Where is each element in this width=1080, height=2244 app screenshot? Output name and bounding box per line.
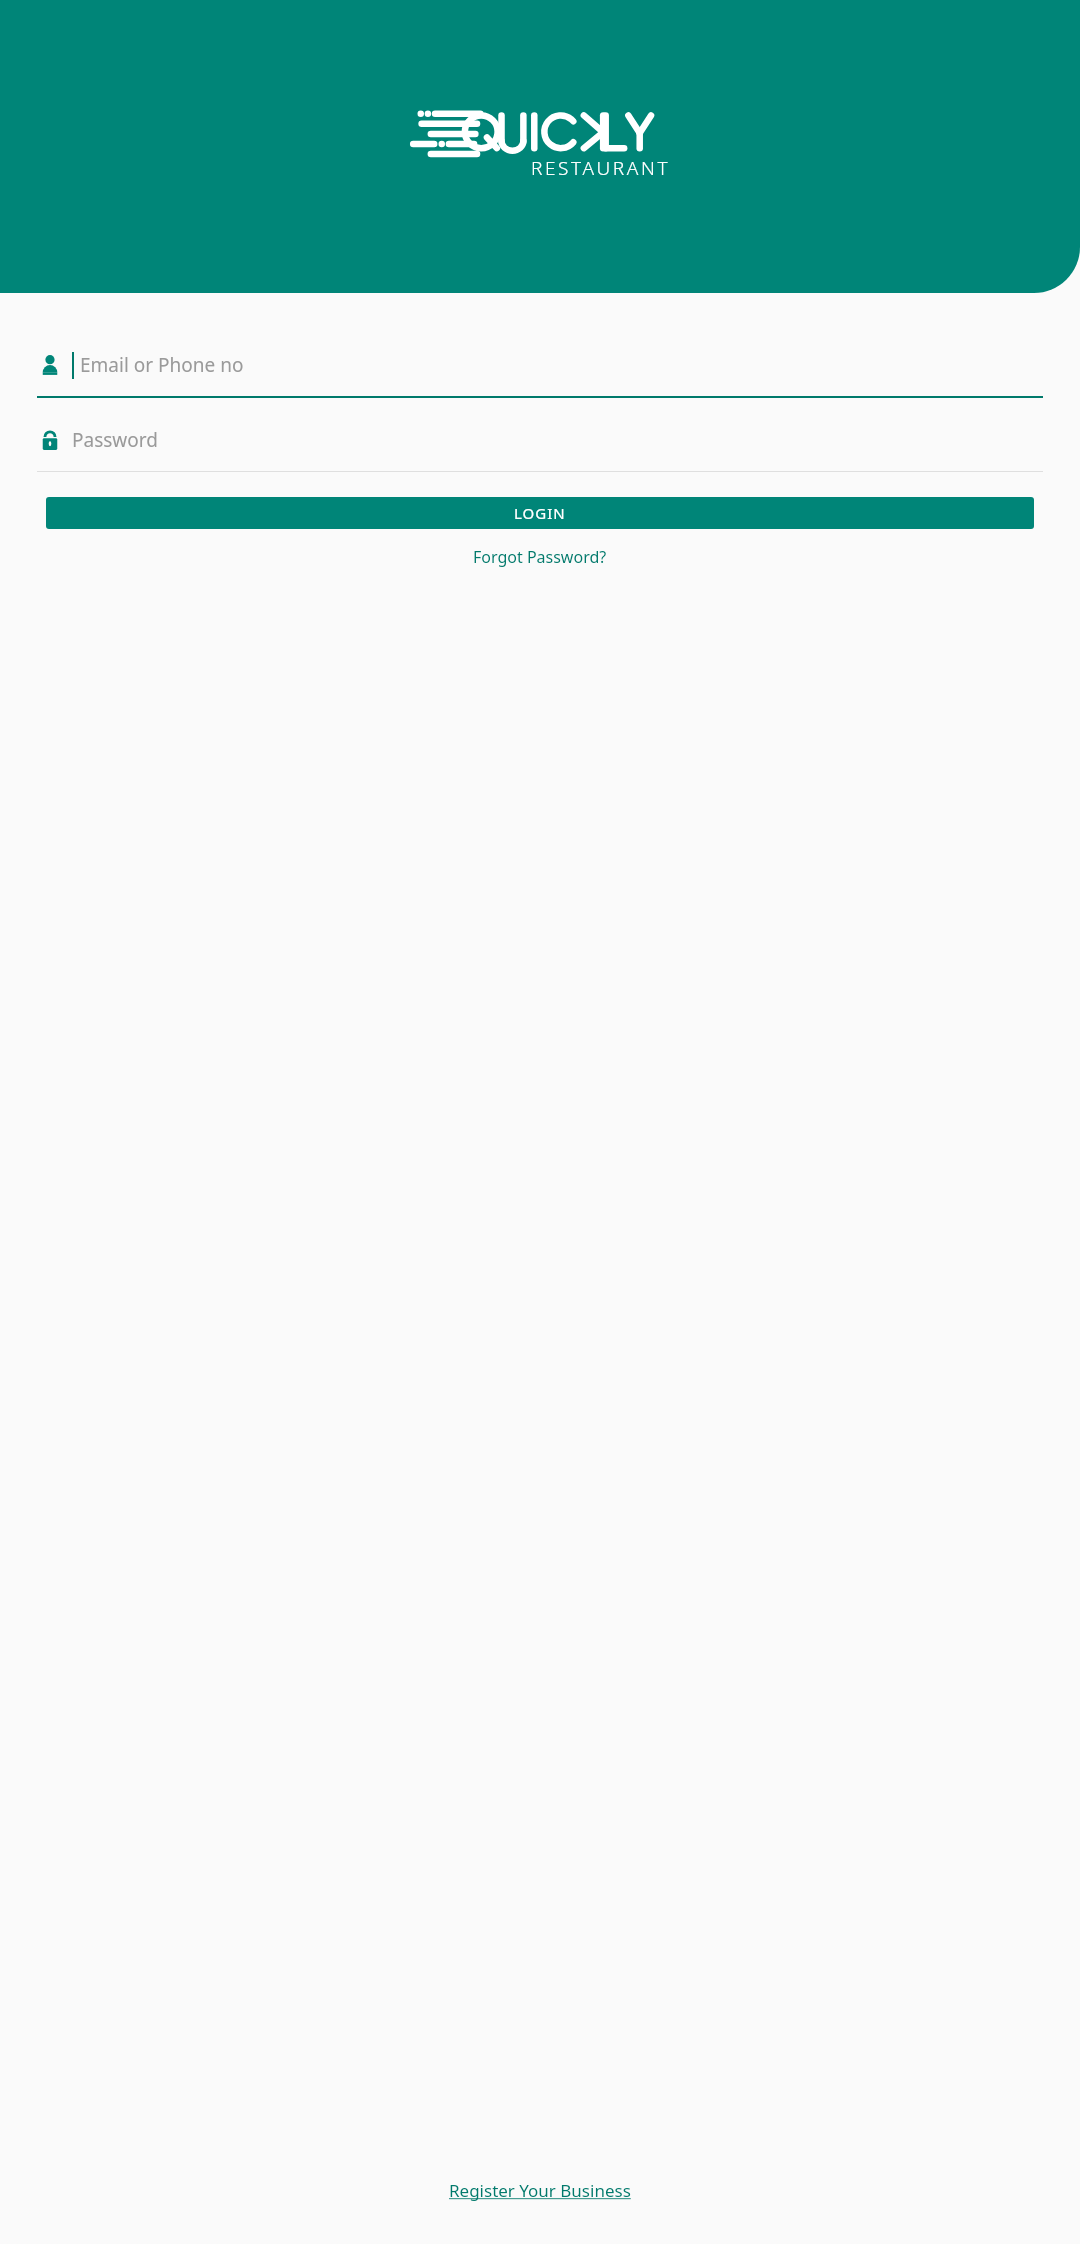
staticText: Register Your Business <box>449 2179 631 2202</box>
button[interactable]: Register Your Business <box>437 2174 643 2207</box>
button[interactable]: Password <box>37 416 1043 472</box>
staticText: Email or Phone no <box>80 352 244 378</box>
button[interactable]: Forgot Password? <box>461 541 619 573</box>
staticText: Forgot Password? <box>473 546 607 568</box>
other: Password <box>39 429 61 451</box>
button[interactable]: Email or phone <box>37 341 1043 398</box>
staticText: RESTAURANT <box>531 155 671 181</box>
staticText: Password <box>72 427 158 453</box>
staticText: LOGIN <box>514 503 566 523</box>
other: Email or phone <box>39 354 61 376</box>
button[interactable]: LOGIN <box>46 497 1034 529</box>
